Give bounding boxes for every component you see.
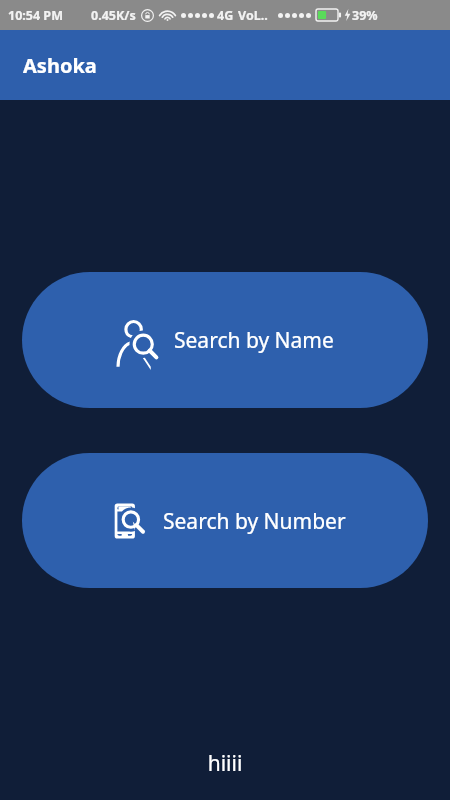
staticText: 4G [217,7,234,24]
staticText: Ashoka [23,52,97,79]
staticText: Search by Name [174,326,334,355]
staticText: VoL.. [238,7,268,24]
staticText: Search by Number [163,507,346,536]
button[interactable]: Search by Name [22,272,428,408]
staticText: 39% [352,7,378,24]
button[interactable]: Search by Number [22,453,428,588]
staticText: 0.45K/s [91,7,136,24]
staticText: 10:54 PM [8,7,63,24]
staticText: hiiii [0,749,450,778]
